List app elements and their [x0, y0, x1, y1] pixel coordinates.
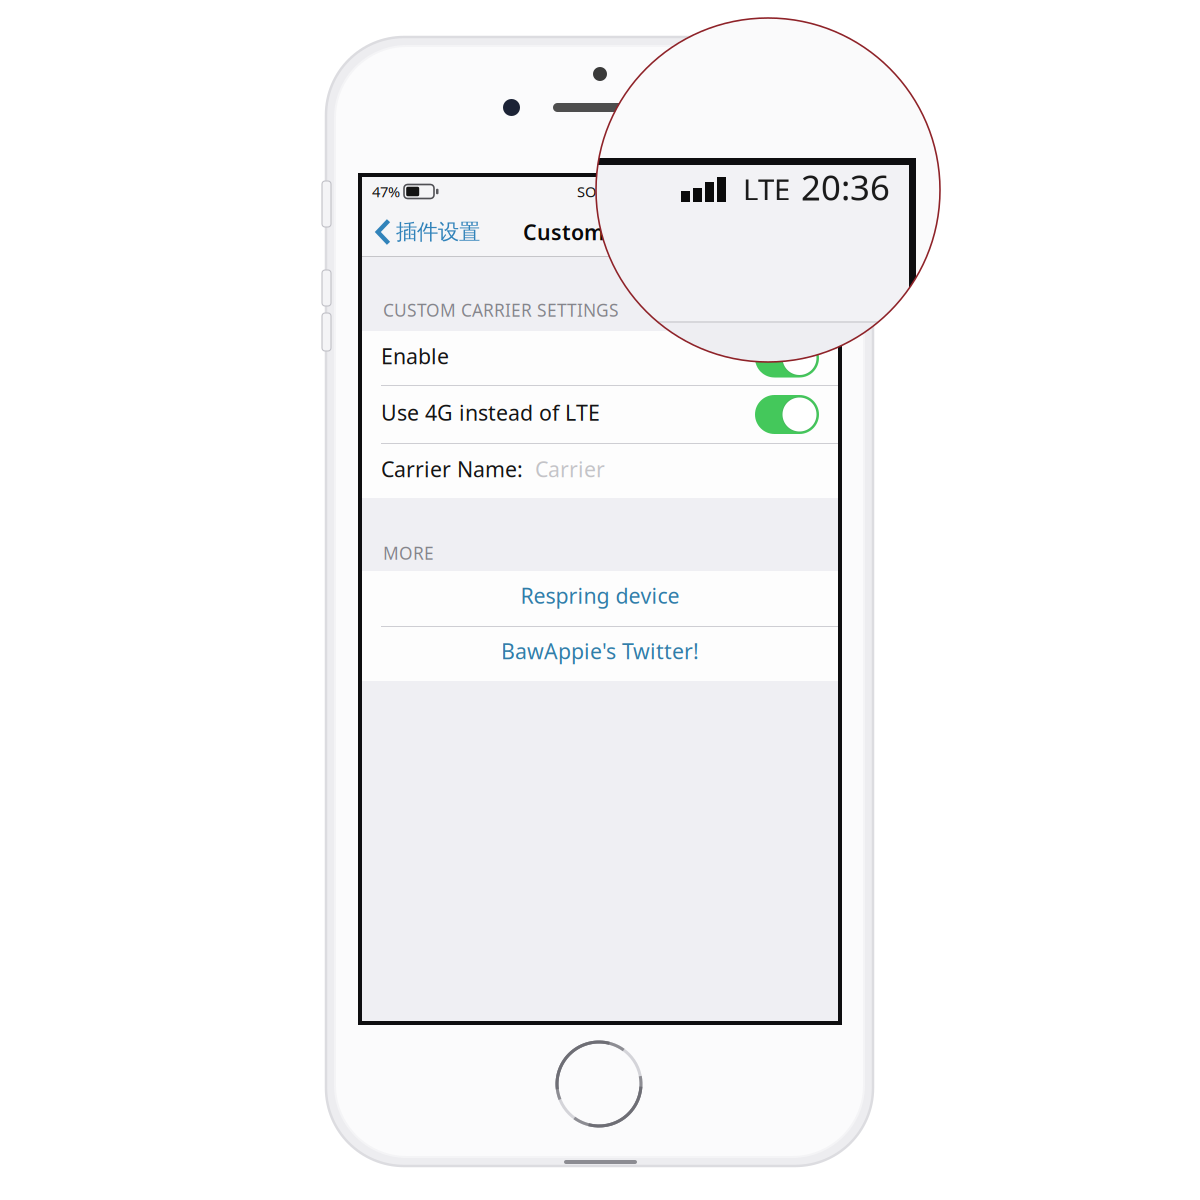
button[interactable]: Use 4G instead of LTE, on: [755, 395, 819, 434]
staticText: 20:36: [801, 164, 890, 210]
staticText: Respring device: [520, 581, 679, 610]
staticText: SOFTBANK: [577, 182, 651, 201]
staticText: BawAppie's Twitter!: [501, 637, 699, 665]
button[interactable]: Carrier Name:: [360, 444, 840, 498]
staticText: Use 4G instead of LTE: [381, 398, 600, 427]
button[interactable]: Respring device: [360, 571, 840, 626]
staticText: Custom Carrier: [523, 218, 681, 246]
button[interactable]: BawAppie's Twitter!: [360, 627, 840, 681]
staticText: LTE: [743, 169, 790, 208]
staticText: CUSTOM CARRIER SETTINGS: [383, 298, 619, 321]
staticText: 47%: [372, 182, 400, 201]
button[interactable]: Back to 插件设置: [360, 208, 488, 256]
button[interactable]: Enable, on: [755, 338, 819, 377]
staticText: Carrier Name:: [381, 455, 523, 483]
staticText: 插件设置: [396, 219, 480, 245]
staticText: MORE: [383, 541, 434, 564]
staticText: Enable: [381, 342, 449, 370]
staticText: Carrier: [523, 455, 605, 483]
